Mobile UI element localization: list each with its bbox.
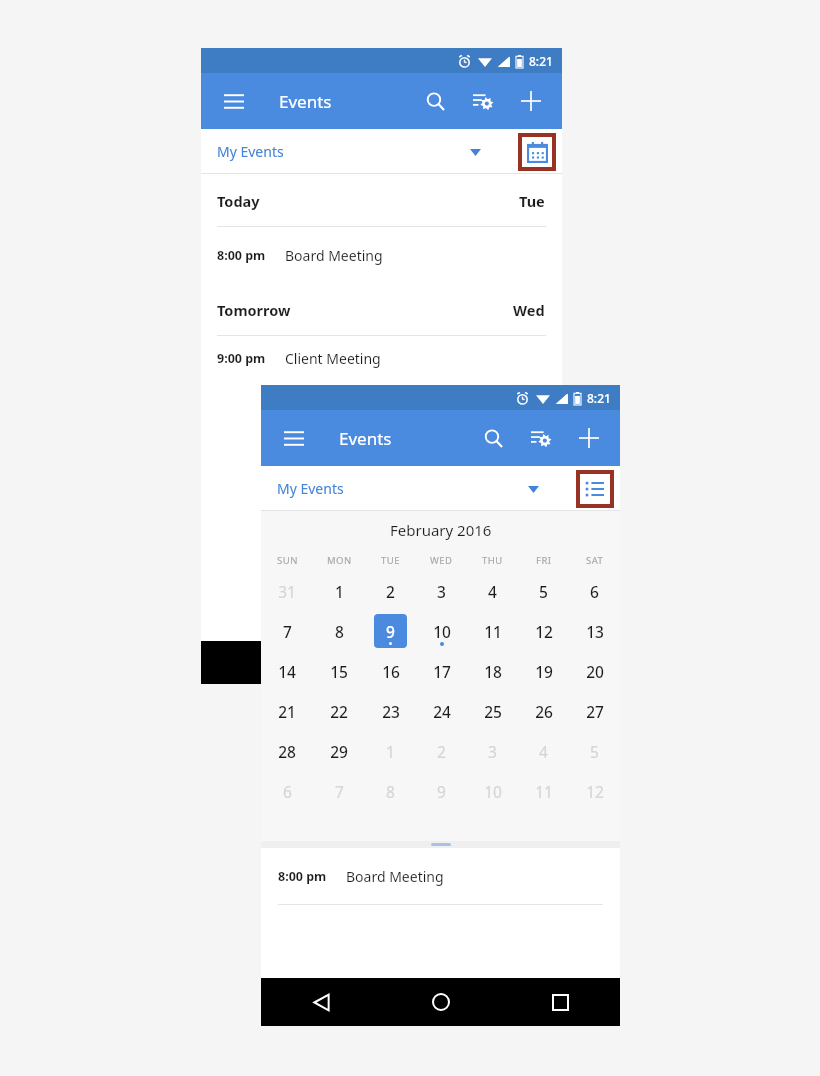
button[interactable]: 3 bbox=[416, 571, 467, 611]
staticText: THU bbox=[482, 554, 503, 567]
staticText: 9:00 pm bbox=[217, 350, 266, 367]
button[interactable]: Recent apps bbox=[500, 978, 620, 1026]
staticText: 6 bbox=[283, 781, 292, 802]
button[interactable]: Expand filter bbox=[464, 141, 486, 163]
button[interactable]: 2 bbox=[365, 571, 416, 611]
button[interactable]: 9 bbox=[365, 611, 416, 651]
button[interactable]: 27 bbox=[569, 691, 620, 731]
button[interactable]: 5 bbox=[569, 731, 620, 771]
button[interactable]: 11 bbox=[518, 771, 569, 811]
staticText: 17 bbox=[433, 661, 451, 682]
staticText: 8:21 bbox=[529, 53, 553, 69]
staticText: Board Meeting bbox=[346, 867, 444, 886]
staticText: 10 bbox=[433, 621, 451, 642]
button[interactable]: 21 bbox=[261, 691, 313, 731]
button[interactable]: 8:00 pm bbox=[201, 227, 562, 283]
button[interactable]: Open navigation menu bbox=[279, 423, 309, 453]
staticText: 21 bbox=[278, 701, 296, 722]
staticText: Tue bbox=[519, 191, 545, 211]
button[interactable]: 6 bbox=[569, 571, 620, 611]
button[interactable]: 25 bbox=[467, 691, 518, 731]
button[interactable]: 20 bbox=[569, 651, 620, 691]
staticText: 2 bbox=[437, 741, 446, 762]
staticText: Events bbox=[279, 90, 332, 113]
button[interactable]: 8:00 pm bbox=[261, 848, 620, 905]
button[interactable]: 16 bbox=[365, 651, 416, 691]
button[interactable]: 19 bbox=[518, 651, 569, 691]
staticText: FRI bbox=[536, 554, 552, 567]
button[interactable]: Add event bbox=[572, 421, 606, 455]
button[interactable]: 17 bbox=[416, 651, 467, 691]
button[interactable]: Filter settings bbox=[524, 421, 558, 455]
button[interactable]: 23 bbox=[365, 691, 416, 731]
button[interactable]: 1 bbox=[313, 571, 365, 611]
button[interactable]: 8 bbox=[365, 771, 416, 811]
button[interactable]: Expand filter bbox=[522, 478, 544, 500]
button[interactable]: 7 bbox=[313, 771, 365, 811]
staticText: 22 bbox=[330, 701, 348, 722]
staticText: MON bbox=[327, 554, 352, 567]
button[interactable]: 6 bbox=[261, 771, 313, 811]
button[interactable]: 14 bbox=[261, 651, 313, 691]
staticText: 9 bbox=[386, 621, 395, 642]
button[interactable]: My Events bbox=[217, 142, 284, 161]
button[interactable]: Search bbox=[418, 84, 452, 118]
button[interactable]: 12 bbox=[518, 611, 569, 651]
button[interactable]: 5 bbox=[518, 571, 569, 611]
staticText: WED bbox=[430, 554, 453, 567]
button[interactable]: 2 bbox=[416, 731, 467, 771]
button[interactable]: 24 bbox=[416, 691, 467, 731]
button[interactable]: Switch to calendar view bbox=[522, 137, 552, 167]
button[interactable]: Switch to list view bbox=[580, 474, 610, 504]
staticText: 25 bbox=[484, 701, 502, 722]
staticText: Tomorrow bbox=[217, 300, 291, 320]
staticText: 15 bbox=[330, 661, 348, 682]
button[interactable]: 15 bbox=[313, 651, 365, 691]
staticText: 5 bbox=[590, 741, 599, 762]
button[interactable]: 9 bbox=[416, 771, 467, 811]
staticText: 8 bbox=[386, 781, 395, 802]
button[interactable]: 10 bbox=[416, 611, 467, 651]
button[interactable]: 8 bbox=[313, 611, 365, 651]
button[interactable]: 9:00 pm bbox=[201, 336, 562, 380]
staticText: Board Meeting bbox=[285, 246, 383, 265]
button[interactable]: 4 bbox=[467, 571, 518, 611]
button[interactable]: 31 bbox=[261, 571, 313, 611]
button[interactable]: 4 bbox=[518, 731, 569, 771]
staticText: SUN bbox=[277, 554, 298, 567]
button[interactable]: Back bbox=[261, 978, 381, 1026]
staticText: 4 bbox=[488, 581, 497, 602]
staticText: 13 bbox=[586, 621, 604, 642]
staticText: 4 bbox=[539, 741, 548, 762]
button[interactable]: Add event bbox=[514, 84, 548, 118]
staticText: 8:21 bbox=[587, 390, 611, 406]
staticText: Events bbox=[339, 427, 392, 450]
button[interactable]: Search bbox=[476, 421, 510, 455]
staticText: Wed bbox=[513, 300, 545, 320]
staticText: 16 bbox=[382, 661, 400, 682]
button[interactable]: My Events bbox=[277, 479, 344, 498]
button[interactable]: Filter settings bbox=[466, 84, 500, 118]
staticText: Client Meeting bbox=[285, 349, 381, 368]
button[interactable]: Open navigation menu bbox=[219, 86, 249, 116]
button[interactable]: 1 bbox=[365, 731, 416, 771]
button[interactable]: 18 bbox=[467, 651, 518, 691]
button[interactable]: 10 bbox=[467, 771, 518, 811]
staticText: 29 bbox=[330, 741, 348, 762]
button[interactable]: 28 bbox=[261, 731, 313, 771]
staticText: 5 bbox=[539, 581, 548, 602]
button[interactable]: 22 bbox=[313, 691, 365, 731]
button[interactable]: Home bbox=[381, 978, 501, 1026]
button[interactable]: 7 bbox=[261, 611, 313, 651]
button[interactable]: 13 bbox=[569, 611, 620, 651]
button[interactable]: 29 bbox=[313, 731, 365, 771]
button[interactable]: 11 bbox=[467, 611, 518, 651]
button[interactable]: 3 bbox=[467, 731, 518, 771]
staticText: 6 bbox=[590, 581, 599, 602]
button[interactable]: 12 bbox=[569, 771, 620, 811]
staticText: 12 bbox=[535, 621, 553, 642]
button[interactable]: 26 bbox=[518, 691, 569, 731]
staticText: 8 bbox=[335, 621, 344, 642]
staticText: 8:00 pm bbox=[278, 868, 327, 885]
staticText: 7 bbox=[335, 781, 344, 802]
